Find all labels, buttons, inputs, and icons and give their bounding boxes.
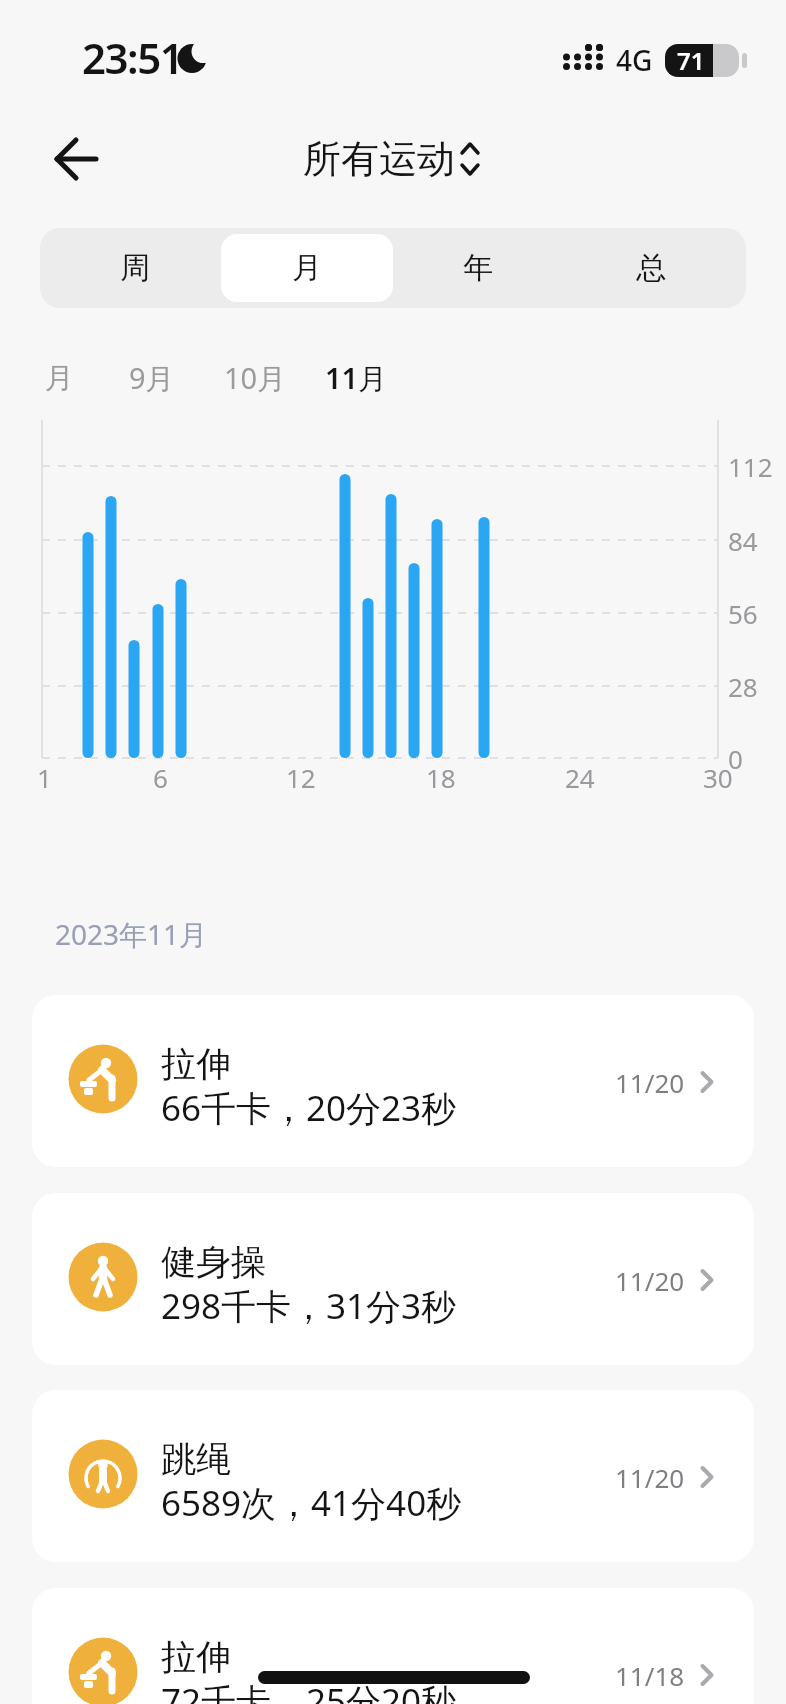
staticText: 24: [565, 760, 595, 795]
staticText: 72千卡，25分20秒: [161, 1677, 457, 1704]
staticText: 112: [728, 449, 773, 484]
staticText: 6589次，41分40秒: [161, 1479, 462, 1527]
staticText: 11/20: [615, 1065, 685, 1100]
staticText: 周: [120, 249, 150, 287]
staticText: 拉伸: [161, 1042, 231, 1086]
staticText: 月: [292, 249, 322, 287]
staticText: 总: [636, 249, 666, 287]
staticText: 跳绳: [161, 1437, 231, 1481]
staticText: 11/20: [615, 1263, 685, 1298]
staticText: 11/20: [615, 1460, 685, 1495]
staticText: 月: [45, 360, 74, 397]
staticText: 84: [728, 523, 758, 558]
staticText: 1: [37, 760, 52, 795]
staticText: 9月: [129, 358, 175, 398]
staticText: 298千卡，31分3秒: [161, 1282, 457, 1330]
staticText: 年: [463, 249, 493, 287]
staticText: 66千卡，20分23秒: [161, 1084, 457, 1132]
staticText: 12: [286, 760, 316, 795]
staticText: 6: [153, 760, 168, 795]
staticText: 23:51: [82, 29, 183, 86]
staticText: 所有运动: [303, 135, 455, 183]
staticText: 28: [728, 669, 758, 704]
staticText: 健身操: [161, 1240, 266, 1284]
staticText: 11月: [325, 358, 388, 398]
staticText: 拉伸: [161, 1635, 231, 1679]
staticText: 11/18: [615, 1658, 685, 1693]
staticText: 30: [703, 760, 733, 795]
staticText: 0: [728, 741, 743, 776]
staticText: 18: [426, 760, 456, 795]
staticText: 2023年11月: [55, 915, 208, 953]
staticText: 4G: [616, 41, 653, 79]
staticText: 56: [728, 596, 758, 631]
staticText: 10月: [224, 358, 287, 398]
staticText: 71: [677, 44, 705, 77]
